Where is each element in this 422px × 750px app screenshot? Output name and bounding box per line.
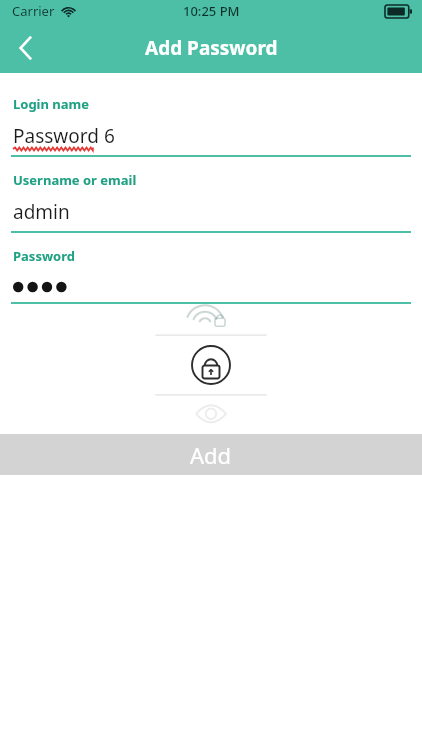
button[interactable] xyxy=(0,275,422,299)
staticText: Login name xyxy=(13,95,89,113)
staticText: Add Password xyxy=(145,35,278,61)
staticText: admin xyxy=(13,199,70,225)
button[interactable]: admin xyxy=(0,197,422,227)
staticText: Password xyxy=(13,247,75,265)
staticText: Carrier xyxy=(12,2,55,20)
staticText: Username or email xyxy=(13,171,137,189)
button[interactable]: Password 6 xyxy=(0,121,422,151)
staticText: Password 6 xyxy=(13,123,115,149)
staticText: Add xyxy=(190,440,232,470)
button[interactable]: Choose icon xyxy=(0,304,422,426)
button[interactable]: Add xyxy=(0,434,422,475)
button[interactable]: Back xyxy=(0,22,52,73)
staticText: 10:25 PM xyxy=(183,2,240,20)
